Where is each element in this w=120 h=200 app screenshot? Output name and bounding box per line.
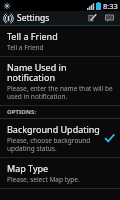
button[interactable]: Background Updating <box>0 119 120 157</box>
button[interactable]: Compose message <box>84 11 100 25</box>
staticText: Name Used in notification <box>7 61 116 83</box>
staticText: Tell a Friend <box>7 30 58 42</box>
staticText: Please, enter the name that will be used… <box>7 84 116 101</box>
staticText: Settings <box>17 12 50 24</box>
button[interactable]: Send feedback <box>100 11 118 25</box>
staticText: 8:33 <box>103 1 118 11</box>
staticText: Map Type <box>7 162 49 174</box>
staticText: Please, choose background updating statu… <box>7 136 102 153</box>
button[interactable]: Name Used in notification <box>0 57 120 105</box>
staticText: Tell a Friend <box>7 43 44 52</box>
button[interactable]: Tell a Friend <box>0 26 120 56</box>
staticText: Background Updating <box>7 123 100 135</box>
staticText: Please, select Map type. <box>7 175 80 184</box>
button[interactable]: Map Type <box>0 158 120 188</box>
staticText: OPTIONS: <box>7 108 36 116</box>
button[interactable]: Background updating enabled <box>102 131 116 145</box>
